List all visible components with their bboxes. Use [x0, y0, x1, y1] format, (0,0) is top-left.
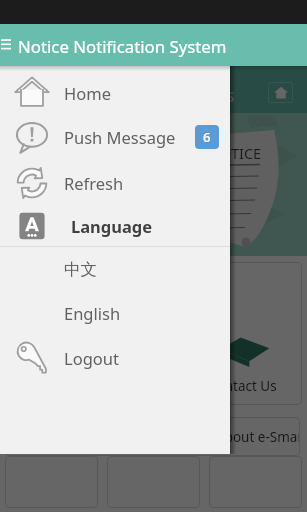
button[interactable]: Refresh: [0, 161, 230, 205]
button[interactable]: [209, 456, 302, 508]
button[interactable]: Home: [0, 71, 230, 115]
staticText: Push Message: [64, 126, 176, 148]
staticText: Home: [64, 82, 111, 104]
button[interactable]: [5, 456, 98, 508]
staticText: About e-Smart: [216, 428, 300, 446]
button[interactable]: Language: [0, 204, 230, 248]
button[interactable]: Logout: [0, 336, 230, 380]
staticText: Language: [71, 215, 153, 237]
button[interactable]: [107, 456, 200, 508]
staticText: Refresh: [64, 172, 124, 194]
staticText: Logout: [64, 347, 119, 369]
staticText: 中文: [64, 259, 97, 280]
button[interactable]: Home: [268, 82, 293, 103]
staticText: Notice Notification System: [18, 35, 227, 58]
button[interactable]: Open navigation drawer: [0, 24, 19, 66]
staticText: Notice News: [129, 83, 235, 108]
button[interactable]: About e-Smart: [5, 417, 300, 456]
staticText: Contact Us: [208, 377, 277, 395]
button[interactable]: 中文: [0, 247, 230, 291]
staticText: NOTICE: [209, 143, 262, 163]
staticText: 6: [203, 128, 211, 146]
staticText: English: [64, 302, 121, 324]
button[interactable]: Contact Us: [5, 262, 302, 405]
button[interactable]: English: [0, 291, 230, 335]
button[interactable]: Push Message: [0, 115, 230, 159]
